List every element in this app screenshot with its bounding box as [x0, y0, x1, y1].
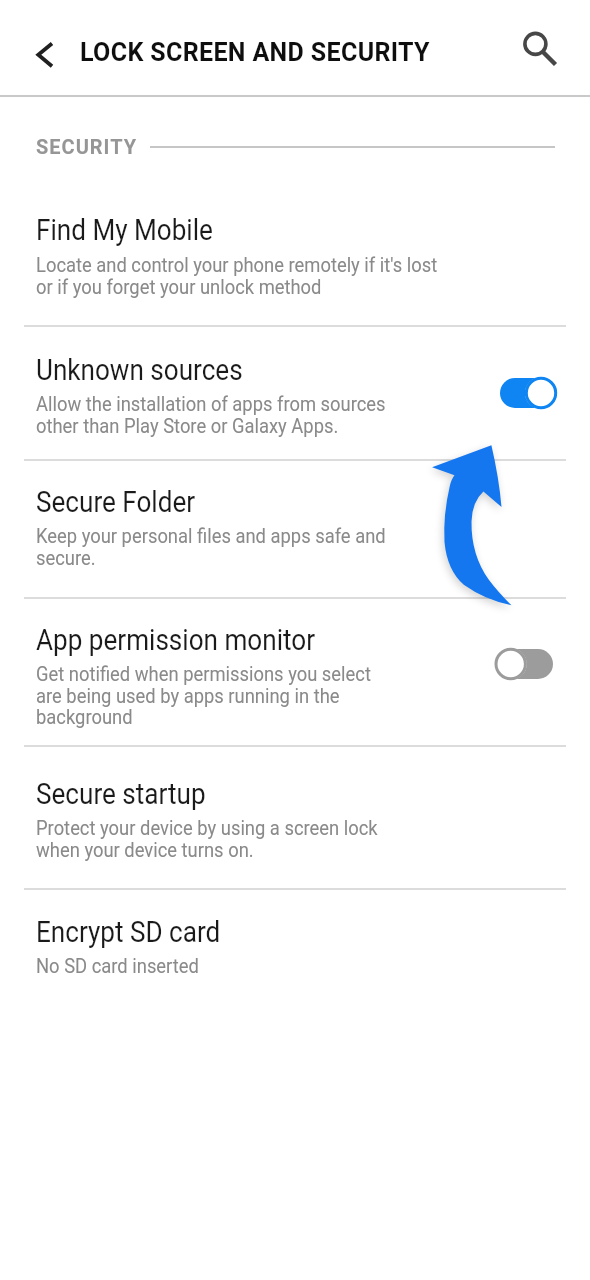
button[interactable]: [490, 644, 558, 684]
staticText: Protect your device by using a screen lo…: [36, 816, 378, 862]
staticText: Secure startup: [36, 777, 206, 811]
staticText: Locate and control your phone remotely i…: [36, 253, 438, 299]
button[interactable]: [24, 30, 68, 74]
staticText: No SD card inserted: [36, 954, 200, 979]
button[interactable]: [494, 373, 562, 413]
button[interactable]: Encrypt SD card: [0, 888, 590, 1000]
staticText: LOCK SCREEN AND SECURITY: [80, 38, 430, 67]
button[interactable]: Secure Folder: [0, 459, 590, 597]
button[interactable]: Unknown sources: [0, 325, 590, 459]
staticText: App permission monitor: [36, 623, 315, 657]
staticText: Find My Mobile: [36, 213, 213, 247]
staticText: Get notified when permissions you select…: [36, 662, 371, 729]
button[interactable]: Find My Mobile: [0, 170, 590, 325]
staticText: Keep your personal files and apps safe a…: [36, 524, 386, 570]
button[interactable]: App permission monitor: [0, 597, 590, 745]
button[interactable]: [505, 18, 565, 78]
staticText: Unknown sources: [36, 353, 243, 387]
staticText: Allow the installation of apps from sour…: [36, 392, 386, 438]
staticText: Encrypt SD card: [36, 915, 220, 949]
button[interactable]: Secure startup: [0, 745, 590, 888]
staticText: SECURITY: [36, 135, 138, 158]
staticText: Secure Folder: [36, 485, 195, 519]
